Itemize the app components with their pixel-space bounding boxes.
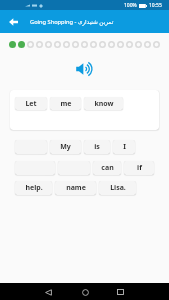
staticText: know: [94, 99, 114, 109]
button[interactable]: Play audio: [75, 62, 97, 76]
staticText: Going Shopping - تمرین شنیداری: [30, 18, 114, 26]
button[interactable]: can: [93, 161, 121, 175]
button[interactable]: me: [50, 97, 81, 110]
staticText: Lisa.: [110, 183, 126, 193]
button[interactable]: My: [50, 140, 81, 154]
button[interactable]: Let: [15, 97, 47, 110]
staticText: is: [94, 142, 100, 152]
button[interactable]: Back: [4, 13, 22, 31]
button[interactable]: name: [55, 181, 96, 195]
button[interactable]: Lisa.: [99, 181, 136, 195]
button[interactable]: if: [124, 161, 154, 175]
button[interactable]: is: [84, 140, 110, 154]
staticText: name: [66, 183, 86, 193]
staticText: I: [123, 142, 126, 152]
button[interactable]: help.: [15, 181, 52, 195]
button[interactable]: I: [113, 140, 135, 154]
staticText: My: [60, 142, 71, 152]
staticText: can: [101, 163, 114, 173]
staticText: help.: [25, 183, 43, 193]
button[interactable]: Back: [42, 286, 54, 298]
staticText: me: [60, 99, 72, 109]
staticText: if: [137, 163, 142, 173]
staticText: 100%: [124, 2, 137, 9]
button[interactable]: Home: [79, 286, 91, 298]
button[interactable]: know: [84, 97, 123, 110]
staticText: Let: [25, 99, 37, 109]
staticText: 10:55: [149, 2, 162, 9]
button[interactable]: Recent apps: [114, 286, 126, 298]
